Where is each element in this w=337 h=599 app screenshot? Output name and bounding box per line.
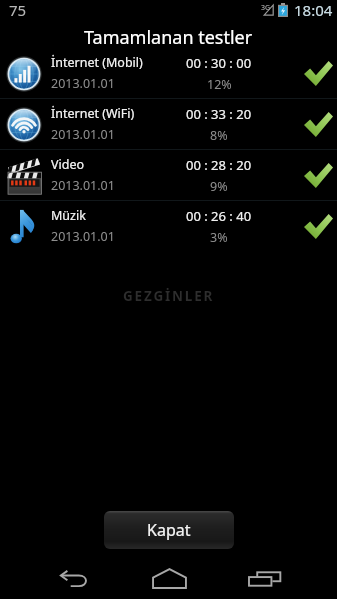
staticText: 00 : 33 : 20 <box>186 105 252 123</box>
staticText: 3G <box>261 3 271 13</box>
staticText: Kapat <box>147 519 191 541</box>
staticText: 2013.01.01 <box>51 228 115 245</box>
staticText: 00 : 30 : 00 <box>186 54 252 72</box>
staticText: GEZGİNLER <box>123 287 215 305</box>
staticText: İnternet (WiFi) <box>51 105 135 122</box>
button[interactable]: Recent apps <box>219 558 309 599</box>
staticText: 9% <box>210 178 228 195</box>
staticText: 12% <box>207 76 232 93</box>
staticText: 00 : 26 : 40 <box>186 207 252 225</box>
staticText: 75 <box>9 0 27 20</box>
button[interactable]: Kapat <box>104 511 234 549</box>
staticText: 8% <box>210 127 228 144</box>
staticText: Tamamlanan testler <box>84 25 253 50</box>
staticText: 00 : 28 : 20 <box>186 156 252 174</box>
staticText: 3% <box>210 229 228 246</box>
staticText: Müzik <box>51 207 86 224</box>
button[interactable]: İnternet (WiFi) <box>0 99 337 149</box>
button[interactable]: Back <box>26 558 122 599</box>
staticText: 2013.01.01 <box>51 126 115 143</box>
button[interactable]: Video <box>0 150 337 200</box>
button[interactable]: Home <box>124 558 214 599</box>
staticText: 18:04 <box>294 0 333 20</box>
staticText: Video <box>51 156 85 173</box>
staticText: 2013.01.01 <box>51 75 115 92</box>
button[interactable]: Müzik <box>0 201 337 251</box>
staticText: İnternet (Mobil) <box>51 54 143 71</box>
staticText: 2013.01.01 <box>51 177 115 194</box>
button[interactable]: İnternet (Mobil) <box>0 48 337 98</box>
